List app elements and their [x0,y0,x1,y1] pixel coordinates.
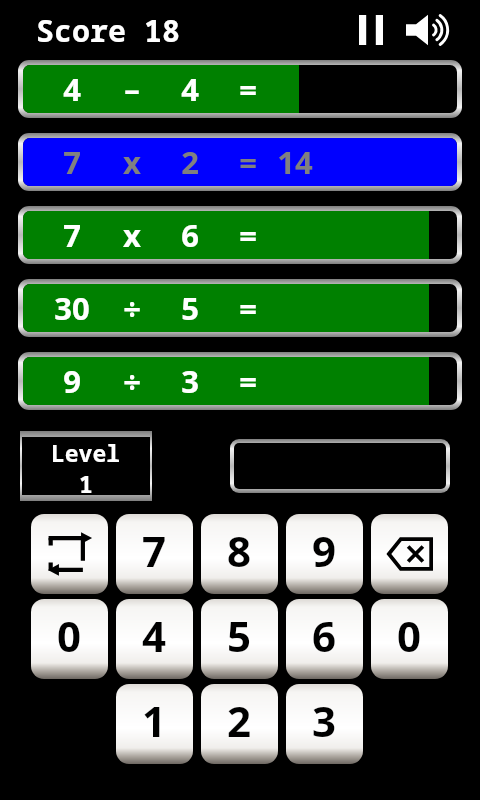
staticText: ÷ [103,360,161,402]
button[interactable]: 2 [201,684,278,764]
staticText: 5 [161,287,219,329]
button[interactable]: 1 [116,684,193,764]
button[interactable]: 4 [18,60,462,118]
button[interactable]: Pause [356,14,386,46]
button[interactable]: 30 [18,279,462,337]
button[interactable]: Sound [404,12,456,48]
staticText: 4 [142,607,167,664]
staticText: 30 [41,287,103,329]
staticText: = [219,214,277,256]
staticText: 7 [41,141,103,183]
staticText: 2 [161,141,219,183]
button[interactable]: 7 [18,133,462,191]
staticText: x [103,141,161,183]
staticText: 9 [312,522,337,579]
staticText: ÷ [103,287,161,329]
staticText: = [219,68,277,110]
staticText: 0 [397,607,422,664]
staticText: 1 [79,468,93,495]
staticText: 2 [227,692,252,749]
staticText: 0 [57,607,82,664]
button[interactable]: 4 [116,599,193,679]
staticText: Level [51,437,121,468]
staticText: 1 [142,692,167,749]
staticText: = [219,141,277,183]
staticText: 7 [142,522,167,579]
button[interactable]: 5 [201,599,278,679]
button[interactable]: 9 [286,514,363,594]
staticText: 4 [161,68,219,110]
staticText: 5 [227,607,252,664]
staticText: 8 [227,522,252,579]
staticText: x [103,214,161,256]
button[interactable] [230,439,450,493]
staticText: – [103,68,161,110]
staticText: 6 [161,214,219,256]
button[interactable]: 3 [286,684,363,764]
staticText: Score 18 [36,10,180,51]
button[interactable]: 8 [201,514,278,594]
button[interactable]: 0 [371,599,448,679]
button[interactable]: Level [22,437,150,495]
staticText: 3 [312,692,337,749]
staticText: 9 [41,360,103,402]
staticText: = [219,360,277,402]
button[interactable]: New question [31,514,108,594]
button[interactable]: 0 [31,599,108,679]
button[interactable]: 7 [116,514,193,594]
staticText: 6 [312,607,337,664]
staticText: = [219,287,277,329]
button[interactable]: 6 [286,599,363,679]
staticText: 3 [161,360,219,402]
staticText: 4 [41,68,103,110]
button[interactable]: Backspace [371,514,448,594]
button[interactable]: 7 [18,206,462,264]
staticText: 7 [41,214,103,256]
button[interactable]: 9 [18,352,462,410]
staticText: 14 [277,141,313,183]
